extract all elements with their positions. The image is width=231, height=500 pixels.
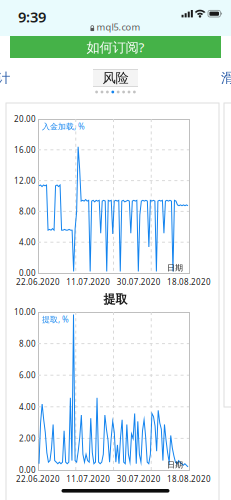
staticText: 16.00 bbox=[14, 144, 36, 155]
staticText: 0.00 bbox=[19, 465, 36, 475]
staticText: 8.00 bbox=[19, 338, 36, 349]
staticText: 入金加载, % bbox=[42, 121, 85, 132]
staticText: 9:39 bbox=[18, 7, 46, 26]
staticText: mql5.com bbox=[96, 21, 140, 33]
staticText: 18.08.2020 bbox=[167, 277, 211, 287]
staticText: 8.00 bbox=[19, 206, 36, 217]
staticText: 2.00 bbox=[19, 433, 36, 444]
staticText: 22.06.2020 bbox=[16, 474, 60, 484]
staticText: 10.00 bbox=[14, 307, 36, 317]
staticText: 18.08.2020 bbox=[167, 474, 211, 484]
staticText: 滑 bbox=[221, 70, 231, 86]
staticText: 11.07.2020 bbox=[66, 277, 110, 287]
staticText: 日期 bbox=[167, 460, 183, 470]
staticText: 11.07.2020 bbox=[66, 474, 110, 484]
staticText: 4.00 bbox=[19, 401, 36, 412]
staticText: 4.00 bbox=[19, 237, 36, 247]
staticText: 提取, % bbox=[42, 314, 69, 325]
staticText: 30.07.2020 bbox=[117, 277, 161, 287]
staticText: 20.00 bbox=[14, 114, 36, 124]
button[interactable]: mql5.com bbox=[0, 22, 231, 32]
staticText: 30.07.2020 bbox=[117, 474, 161, 484]
staticText: 6.00 bbox=[19, 370, 36, 380]
button[interactable]: 风险 bbox=[93, 69, 138, 87]
button[interactable]: 滑 bbox=[220, 69, 231, 87]
staticText: 计 bbox=[0, 70, 10, 86]
staticText: 0.00 bbox=[19, 268, 36, 278]
staticText: 22.06.2020 bbox=[16, 277, 60, 287]
staticText: 12.00 bbox=[14, 175, 36, 186]
staticText: 风险 bbox=[102, 70, 128, 86]
staticText: 日期 bbox=[167, 263, 183, 273]
staticText: 如何订阅? bbox=[86, 38, 144, 56]
staticText: 提取 bbox=[103, 292, 127, 307]
button[interactable]: 计 bbox=[0, 69, 11, 87]
button[interactable]: 如何订阅? bbox=[10, 36, 221, 58]
